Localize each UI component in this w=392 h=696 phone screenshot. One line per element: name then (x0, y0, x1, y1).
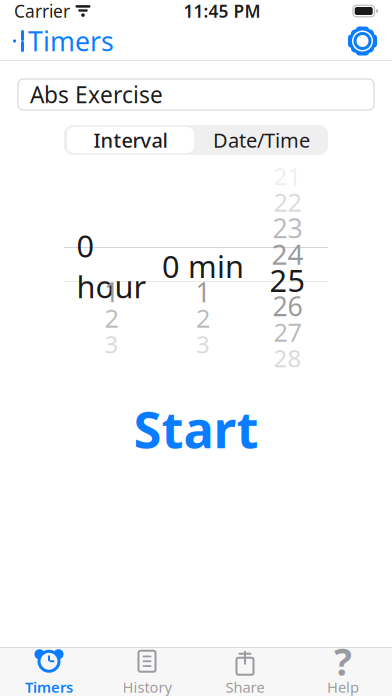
staticText: 1 (104, 274, 119, 310)
staticText: Timers (28, 23, 114, 59)
staticText: Interval (93, 127, 167, 153)
staticText: 25 (269, 260, 305, 300)
button[interactable]: Interval (65, 125, 196, 155)
staticText: Abs Exercise (30, 79, 163, 109)
button[interactable]: Timers (0, 648, 98, 696)
staticText: 23 (272, 210, 302, 246)
staticText: 27 (273, 315, 301, 349)
button[interactable]: History (98, 648, 196, 696)
staticText: 24 (271, 235, 303, 273)
button[interactable]: Timers (0, 18, 124, 64)
staticText: 1 (195, 274, 210, 310)
staticText: Share (225, 677, 264, 696)
staticText: Help (327, 677, 359, 696)
staticText: 26 (272, 288, 302, 324)
staticText: Start (133, 395, 258, 462)
staticText: History (122, 677, 171, 696)
staticText: Carrier (14, 0, 70, 22)
button[interactable]: Date/Time (196, 125, 327, 155)
staticText: Date/Time (213, 127, 310, 153)
button[interactable]: Share (196, 648, 294, 696)
staticText: 22 (273, 185, 301, 219)
staticText: 2 (196, 301, 210, 335)
staticText: 21 (273, 160, 301, 192)
staticText: ? (334, 636, 352, 686)
staticText: 3 (196, 328, 210, 360)
button[interactable]: Settings (333, 22, 392, 59)
staticText: 28 (273, 342, 301, 374)
staticText: 0 hour (76, 225, 146, 307)
staticText: 11:45 PM (183, 0, 260, 22)
button[interactable]: ? (294, 648, 392, 696)
staticText: 0 min (162, 246, 244, 286)
staticText: 3 (104, 328, 118, 360)
staticText: Timers (25, 677, 73, 696)
staticText: 2 (104, 301, 118, 335)
button[interactable]: Start (97, 387, 294, 470)
